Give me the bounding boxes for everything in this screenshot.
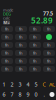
button[interactable]: 0 <box>32 89 40 99</box>
staticText: fn <box>19 42 23 48</box>
staticText: fn <box>19 50 23 56</box>
button[interactable]: fn <box>29 50 41 56</box>
staticText: M+ <box>3 20 9 25</box>
button[interactable]: fn <box>1 34 13 40</box>
button[interactable]: M+ <box>3 20 10 24</box>
button[interactable]: 8 <box>16 89 24 99</box>
button[interactable]: Convert <box>43 34 55 40</box>
button[interactable]: fn <box>43 58 55 64</box>
staticText: fn <box>5 26 9 32</box>
staticText: fn <box>33 58 37 64</box>
staticText: 3 <box>18 81 21 88</box>
button[interactable]: 5 <box>32 79 40 89</box>
staticText: fn <box>5 34 9 40</box>
button[interactable]: fn <box>29 58 41 64</box>
staticText: mode <box>3 7 13 13</box>
button[interactable]: fn <box>15 66 27 72</box>
button[interactable]: fn <box>15 26 27 32</box>
staticText: fn <box>19 66 23 72</box>
staticText: fn <box>33 66 37 72</box>
staticText: 77.5 <box>43 10 53 17</box>
staticText: 9 <box>26 91 29 98</box>
staticText: 8 <box>18 91 21 98</box>
button[interactable]: fn <box>15 42 27 48</box>
button[interactable]: fn <box>1 58 13 64</box>
staticText: 2 <box>10 81 13 88</box>
button[interactable]: 4 <box>24 79 32 89</box>
button[interactable]: fn <box>1 66 13 72</box>
staticText: fn <box>33 26 37 32</box>
button[interactable]: fn <box>29 34 41 40</box>
staticText: fn <box>5 58 9 64</box>
staticText: 7 <box>10 91 13 98</box>
staticText: DEG <box>3 11 11 17</box>
staticText: fn <box>47 50 51 56</box>
button[interactable]: fn <box>43 42 55 48</box>
staticText: fn <box>5 50 9 56</box>
staticText: 1 <box>2 81 5 88</box>
staticText: fn <box>47 66 51 72</box>
staticText: 6 <box>2 91 5 98</box>
button[interactable]: 6 <box>0 89 8 99</box>
staticText: AC <box>49 81 55 88</box>
button[interactable]: 7 <box>8 89 16 99</box>
button[interactable]: Equals <box>48 89 56 99</box>
staticText: 0 <box>34 91 37 98</box>
button[interactable]: 9 <box>24 89 32 99</box>
staticText: 5 <box>34 81 37 88</box>
button[interactable]: fn <box>43 26 55 32</box>
staticText: 52.89 <box>31 15 53 26</box>
button[interactable]: fn <box>1 50 13 56</box>
button[interactable]: fn <box>15 58 27 64</box>
button[interactable]: fn <box>1 42 13 48</box>
staticText: C <box>42 81 45 88</box>
button[interactable]: fn <box>29 66 41 72</box>
staticText: fn <box>47 42 51 48</box>
button[interactable]: fn <box>29 26 41 32</box>
button[interactable]: 3 <box>16 79 24 89</box>
button[interactable]: fn <box>43 50 55 56</box>
button[interactable]: C <box>40 79 48 89</box>
button[interactable]: 2 <box>8 79 16 89</box>
staticText: calc <box>3 15 10 21</box>
button[interactable]: . <box>40 89 48 99</box>
staticText: fn <box>47 58 51 64</box>
button[interactable]: fn <box>15 50 27 56</box>
staticText: fn <box>19 26 23 32</box>
button[interactable]: AC <box>48 79 56 89</box>
button[interactable]: fn <box>43 66 55 72</box>
staticText: fn <box>47 26 51 32</box>
staticText: fn <box>19 58 23 64</box>
staticText: fn <box>33 42 37 48</box>
button[interactable]: fn <box>29 42 41 48</box>
staticText: fn <box>5 66 9 72</box>
button[interactable]: fn <box>1 26 13 32</box>
staticText: 4 <box>26 81 29 88</box>
button[interactable]: fn <box>15 34 27 40</box>
staticText: fn <box>33 50 37 56</box>
staticText: fn <box>19 34 23 40</box>
button[interactable]: 1 <box>0 79 8 89</box>
staticText: fn <box>5 42 9 48</box>
staticText: fn <box>33 34 37 40</box>
